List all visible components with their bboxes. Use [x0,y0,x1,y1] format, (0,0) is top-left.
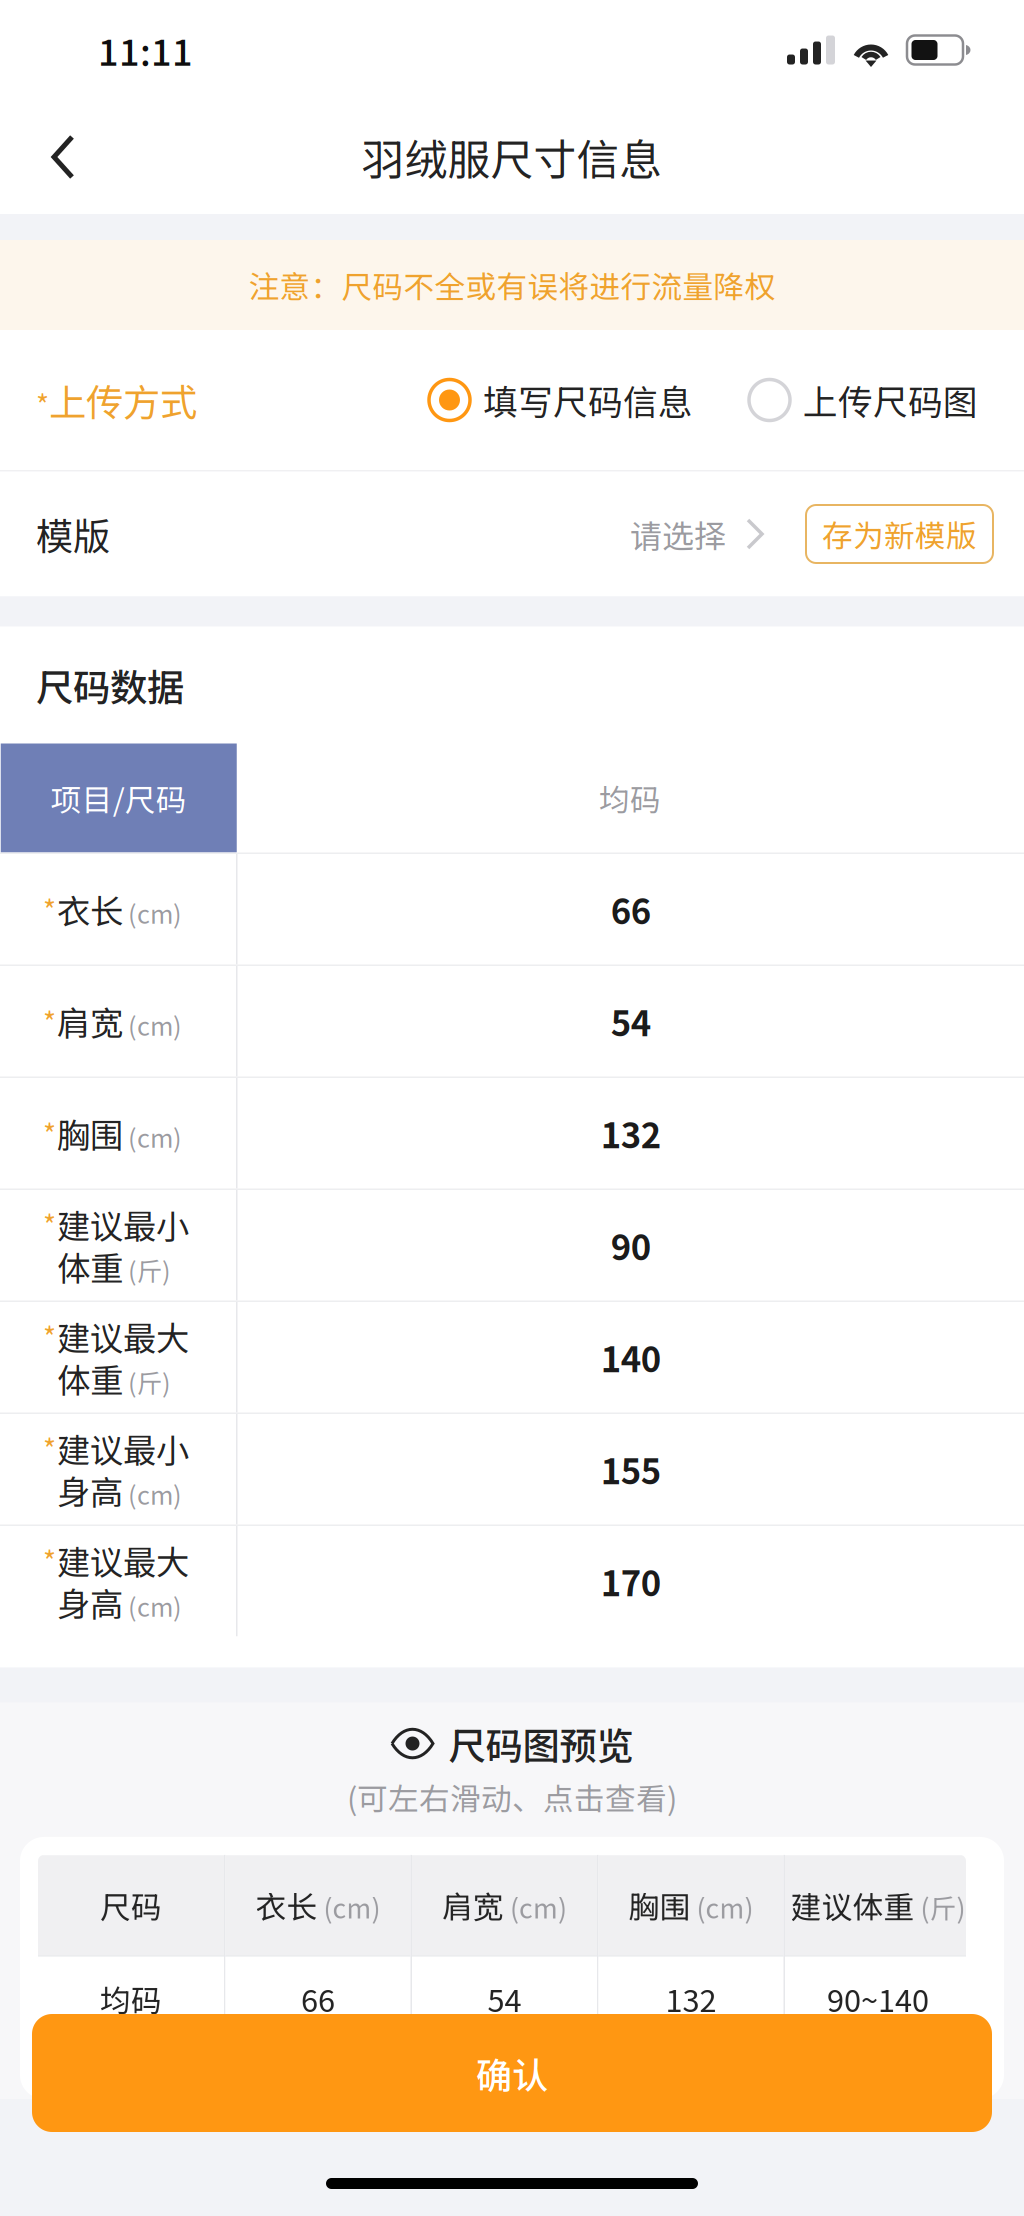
staticText: 54 [611,996,651,1046]
button[interactable]: 返回 [0,95,126,219]
staticText: 体重 [57,1242,123,1290]
staticText: 上传尺码图 [803,375,978,425]
staticText: 身高 [57,1466,123,1514]
staticText: 66 [611,884,651,934]
staticText: * [43,1316,56,1356]
button[interactable]: 存为新模版 [806,505,993,563]
staticText: 建议最小 [57,1424,189,1472]
staticText: * [43,1540,56,1580]
staticText: 模版 [36,507,110,561]
staticText: 身高 [57,1578,123,1626]
button[interactable]: 确认 [32,2014,992,2132]
staticText: 肩宽 [442,1883,504,1927]
staticText: 90 [611,1220,651,1270]
staticText: 上传方式 [49,373,197,427]
staticText: * [36,384,49,424]
staticText: (cm) [123,1006,182,1043]
staticText: (斤) [123,1363,171,1400]
staticText: (cm) [504,1888,567,1926]
staticText: 尺码 [100,1883,162,1927]
staticText: 确认 [476,2047,548,2099]
staticText: 请选择 [630,511,726,557]
staticText: 尺码数据 [36,658,184,712]
staticText: 155 [601,1444,661,1494]
staticText: * [43,1204,56,1244]
staticText: * [43,1001,56,1041]
button[interactable]: 填写尺码信息 [429,375,693,425]
staticText: 11:11 [98,24,193,76]
staticText: 存为新模版 [822,512,977,556]
staticText: 均码 [100,1976,162,2021]
staticText: 胸围 [57,1109,123,1157]
staticText: 建议最大 [57,1312,189,1360]
staticText: 90~140 [827,1976,929,2021]
staticText: * [43,1113,56,1153]
staticText: (cm) [123,1587,182,1624]
button[interactable]: 请选择 [630,511,766,557]
staticText: (cm) [690,1888,753,1926]
staticText: 132 [601,1108,661,1158]
staticText: 衣长 [57,885,123,933]
staticText: 填写尺码信息 [483,375,693,425]
staticText: (cm) [123,894,182,931]
staticText: 衣长 [255,1883,317,1927]
staticText: (斤) [914,1888,965,1926]
button[interactable]: 上传尺码图 [749,375,978,425]
staticText: 羽绒服尺寸信息 [361,126,662,188]
staticText: 肩宽 [57,997,123,1045]
button[interactable]: 尺码 [20,1837,1004,2099]
staticText: 建议体重 [790,1883,914,1927]
staticText: 66 [301,1976,335,2021]
staticText: 尺码图预览 [448,1716,633,1771]
staticText: (cm) [123,1475,182,1512]
staticText: * [43,1428,56,1468]
staticText: 胸围 [628,1883,690,1927]
staticText: 建议最大 [57,1536,189,1584]
staticText: 体重 [57,1354,123,1402]
staticText: * [43,889,56,929]
staticText: 注意：尺码不全或有误将进行流量降权 [248,263,775,307]
staticText: 170 [601,1556,661,1606]
staticText: (斤) [123,1251,171,1288]
staticText: 132 [665,1976,716,2021]
staticText: 54 [487,1976,521,2021]
staticText: 项目/尺码 [51,776,187,820]
staticText: 建议最小 [57,1200,189,1248]
staticText: (cm) [123,1118,182,1155]
staticText: (cm) [317,1888,380,1926]
staticText: 140 [601,1332,661,1382]
staticText: (可左右滑动、点击查看) [347,1775,677,1819]
staticText: 均码 [599,776,661,820]
